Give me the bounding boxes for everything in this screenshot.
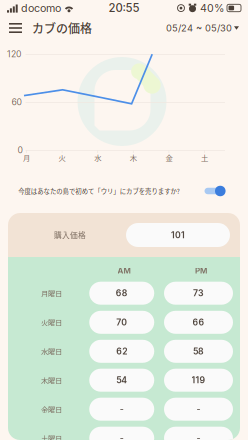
staticText: 70: [116, 317, 127, 328]
button[interactable]: 68: [89, 282, 154, 305]
staticText: 62: [116, 346, 127, 357]
staticText: AM: [117, 266, 130, 276]
staticText: 120: [7, 49, 21, 59]
staticText: 0: [17, 145, 22, 155]
staticText: -: [196, 433, 200, 440]
staticText: 05/24 ~ 05/30: [166, 22, 232, 34]
staticText: 40%: [200, 1, 224, 14]
button[interactable]: Toggle first sale: [198, 179, 231, 202]
staticText: 68: [116, 288, 128, 298]
staticText: 土曜日: [41, 433, 62, 440]
button[interactable]: 05/24 ~ 05/30: [166, 16, 248, 40]
staticText: 73: [193, 288, 204, 298]
button[interactable]: -: [89, 427, 154, 440]
staticText: 購入価格: [54, 229, 86, 241]
staticText: 20:55: [108, 1, 139, 15]
button[interactable]: 101: [126, 223, 230, 247]
button[interactable]: Menu: [0, 17, 30, 39]
button[interactable]: 58: [164, 340, 233, 363]
button[interactable]: 119: [164, 369, 233, 392]
staticText: カブの価格: [32, 19, 92, 37]
staticText: -: [196, 404, 200, 414]
button[interactable]: 66: [164, 311, 233, 334]
staticText: 土: [201, 152, 208, 163]
staticText: 火曜日: [41, 317, 62, 328]
staticText: docomo: [21, 1, 61, 14]
staticText: PM: [195, 266, 207, 276]
button[interactable]: 70: [89, 311, 154, 334]
staticText: 60: [11, 97, 21, 107]
staticText: 58: [193, 346, 204, 357]
staticText: 木: [130, 152, 137, 163]
staticText: 水: [94, 152, 101, 163]
staticText: 54: [116, 375, 127, 385]
button[interactable]: -: [164, 398, 233, 421]
staticText: 木曜日: [41, 375, 62, 385]
button[interactable]: -: [89, 398, 154, 421]
staticText: 金曜日: [41, 404, 62, 414]
staticText: 119: [191, 375, 205, 385]
button[interactable]: 62: [89, 340, 154, 363]
button[interactable]: 54: [89, 369, 154, 392]
staticText: 月曜日: [41, 288, 62, 298]
staticText: 月: [23, 152, 30, 163]
staticText: 火: [59, 152, 66, 163]
staticText: -: [120, 433, 124, 440]
staticText: -: [120, 404, 124, 414]
staticText: 今度はあなたの島で初めて「ウリ」にカブを売りますか?: [18, 186, 180, 196]
staticText: 101: [171, 230, 185, 240]
staticText: 水曜日: [41, 346, 62, 357]
button[interactable]: 73: [164, 282, 233, 305]
staticText: 66: [192, 317, 204, 328]
button[interactable]: -: [164, 427, 233, 440]
staticText: 金: [165, 152, 172, 163]
